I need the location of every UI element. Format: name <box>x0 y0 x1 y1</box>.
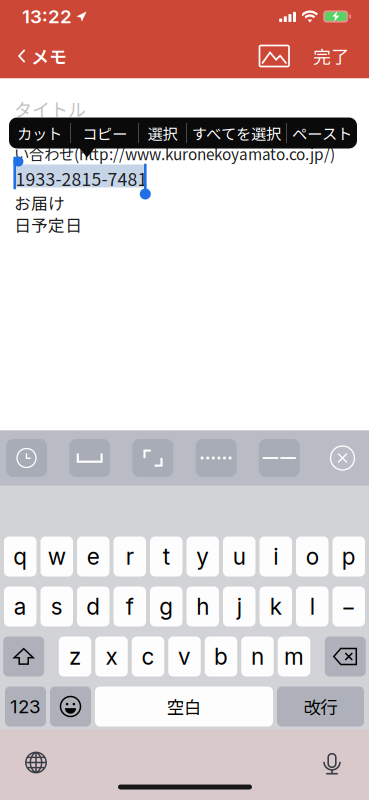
staticText: ペースト <box>292 122 352 144</box>
button[interactable]: g <box>150 586 182 626</box>
staticText: c <box>141 643 154 670</box>
staticText: f <box>126 593 134 620</box>
button[interactable]: p <box>332 536 365 576</box>
staticText: i <box>273 543 278 570</box>
staticText: m <box>284 643 304 670</box>
button[interactable]: − <box>332 586 365 626</box>
staticText: 13:22 <box>22 5 72 28</box>
button[interactable]: f <box>113 586 146 626</box>
button[interactable]: Shift <box>3 636 44 676</box>
staticText: メモ <box>31 43 67 69</box>
staticText: z <box>69 643 81 670</box>
staticText: コピー <box>82 122 127 144</box>
staticText: 改行 <box>303 694 337 719</box>
staticText: v <box>178 643 191 670</box>
button[interactable]: k <box>259 586 292 626</box>
button[interactable]: t <box>150 536 182 576</box>
button[interactable]: y <box>186 536 219 576</box>
staticText: − <box>341 593 356 620</box>
staticText: g <box>159 593 173 620</box>
staticText: w <box>48 543 66 570</box>
button[interactable]: e <box>77 536 109 576</box>
button[interactable]: 完了 <box>301 33 369 78</box>
staticText: o <box>306 543 319 570</box>
staticText: d <box>86 593 100 620</box>
staticText: a <box>14 593 27 620</box>
staticText: r <box>126 543 134 570</box>
button[interactable]: s <box>40 586 73 626</box>
staticText: い合わせ(http://www.kuronekoyamato.co.jp/) <box>14 142 335 165</box>
staticText: e <box>87 543 100 570</box>
staticText: y <box>196 543 209 570</box>
staticText: k <box>270 593 282 620</box>
staticText: 空白 <box>167 694 201 719</box>
staticText: 1933-2815-7481 <box>15 165 147 191</box>
button[interactable]: 絵文字 <box>50 686 91 726</box>
staticText: カット <box>17 122 62 144</box>
staticText: q <box>13 543 27 570</box>
staticText: 日予定日 <box>14 212 82 237</box>
button[interactable]: すべてを選択 <box>187 117 286 148</box>
staticText: t <box>163 543 170 570</box>
button[interactable]: v <box>168 636 201 676</box>
button[interactable]: b <box>205 636 237 676</box>
button[interactable]: j <box>223 586 255 626</box>
button[interactable]: メモ <box>0 33 77 78</box>
button[interactable]: ダッシュ <box>259 439 300 477</box>
button[interactable]: a <box>4 586 36 626</box>
button[interactable]: 改行 <box>277 686 364 726</box>
button[interactable]: w <box>40 536 73 576</box>
button[interactable]: 123 <box>5 686 46 726</box>
button[interactable]: 音声入力 <box>314 741 350 784</box>
button[interactable]: h <box>186 586 219 626</box>
button[interactable]: 写真を追加 <box>246 33 301 78</box>
button[interactable]: q <box>4 536 36 576</box>
button[interactable]: l <box>296 586 328 626</box>
staticText: h <box>196 593 209 620</box>
staticText: x <box>105 643 117 670</box>
staticText: タイトル <box>14 95 86 122</box>
button[interactable]: i <box>259 536 292 576</box>
staticText: j <box>237 593 242 620</box>
button[interactable]: スペース <box>69 439 110 477</box>
staticText: 123 <box>10 695 41 718</box>
button[interactable]: 削除 <box>325 636 366 676</box>
staticText: 選択 <box>147 122 177 144</box>
staticText: 完了 <box>313 43 349 69</box>
button[interactable]: 選択 <box>139 117 186 148</box>
button[interactable]: かぎかっこ <box>132 439 173 477</box>
button[interactable]: d <box>77 586 109 626</box>
button[interactable]: z <box>59 636 91 676</box>
button[interactable]: カット <box>9 117 70 148</box>
button[interactable]: コピー <box>71 117 138 148</box>
button[interactable]: 空白 <box>95 686 273 726</box>
button[interactable]: 時刻 <box>6 439 47 477</box>
staticText: p <box>342 543 356 570</box>
button[interactable]: 閉じる <box>322 439 363 477</box>
button[interactable]: n <box>241 636 274 676</box>
button[interactable]: r <box>113 536 146 576</box>
staticText: s <box>51 593 63 620</box>
staticText: l <box>310 593 315 620</box>
button[interactable]: u <box>223 536 255 576</box>
button[interactable]: ペースト <box>287 117 357 148</box>
button[interactable]: m <box>278 636 310 676</box>
button[interactable]: x <box>95 636 128 676</box>
button[interactable]: 中黒 <box>196 439 237 477</box>
staticText: お届け <box>14 190 65 215</box>
button[interactable]: o <box>296 536 328 576</box>
staticText: n <box>251 643 264 670</box>
button[interactable]: 言語を切り替える <box>16 742 56 782</box>
button[interactable]: c <box>132 636 164 676</box>
staticText: u <box>233 543 246 570</box>
staticText: すべてを選択 <box>192 122 281 144</box>
staticText: b <box>214 643 228 670</box>
